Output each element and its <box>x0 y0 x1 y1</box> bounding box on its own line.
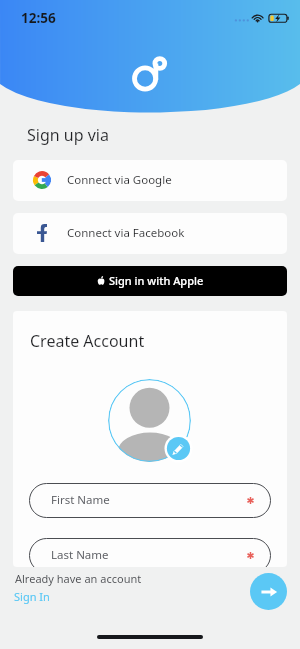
button[interactable]: Sign In <box>13 589 51 604</box>
staticText: Create Account <box>30 330 145 352</box>
staticText: First Name <box>51 492 110 508</box>
button[interactable]: Edit photo <box>163 433 194 464</box>
button[interactable]: Connect via Google <box>13 160 287 201</box>
staticText: Sign in with Apple <box>109 273 204 288</box>
staticText: Connect via Google <box>67 172 172 188</box>
button[interactable]: Last Name <box>29 538 271 567</box>
button[interactable]: Sign in with Apple <box>13 266 287 296</box>
staticText: Connect via Facebook <box>67 225 185 241</box>
staticText: 12:56 <box>21 9 56 27</box>
staticText: Sign In <box>14 589 50 604</box>
button[interactable]: Next <box>250 573 287 610</box>
staticText: Sign up via <box>27 124 109 146</box>
button[interactable]: First Name <box>29 483 271 518</box>
staticText: Already have an account <box>15 571 142 586</box>
button[interactable]: Connect via Facebook <box>13 213 287 254</box>
staticText: Last Name <box>51 547 109 563</box>
